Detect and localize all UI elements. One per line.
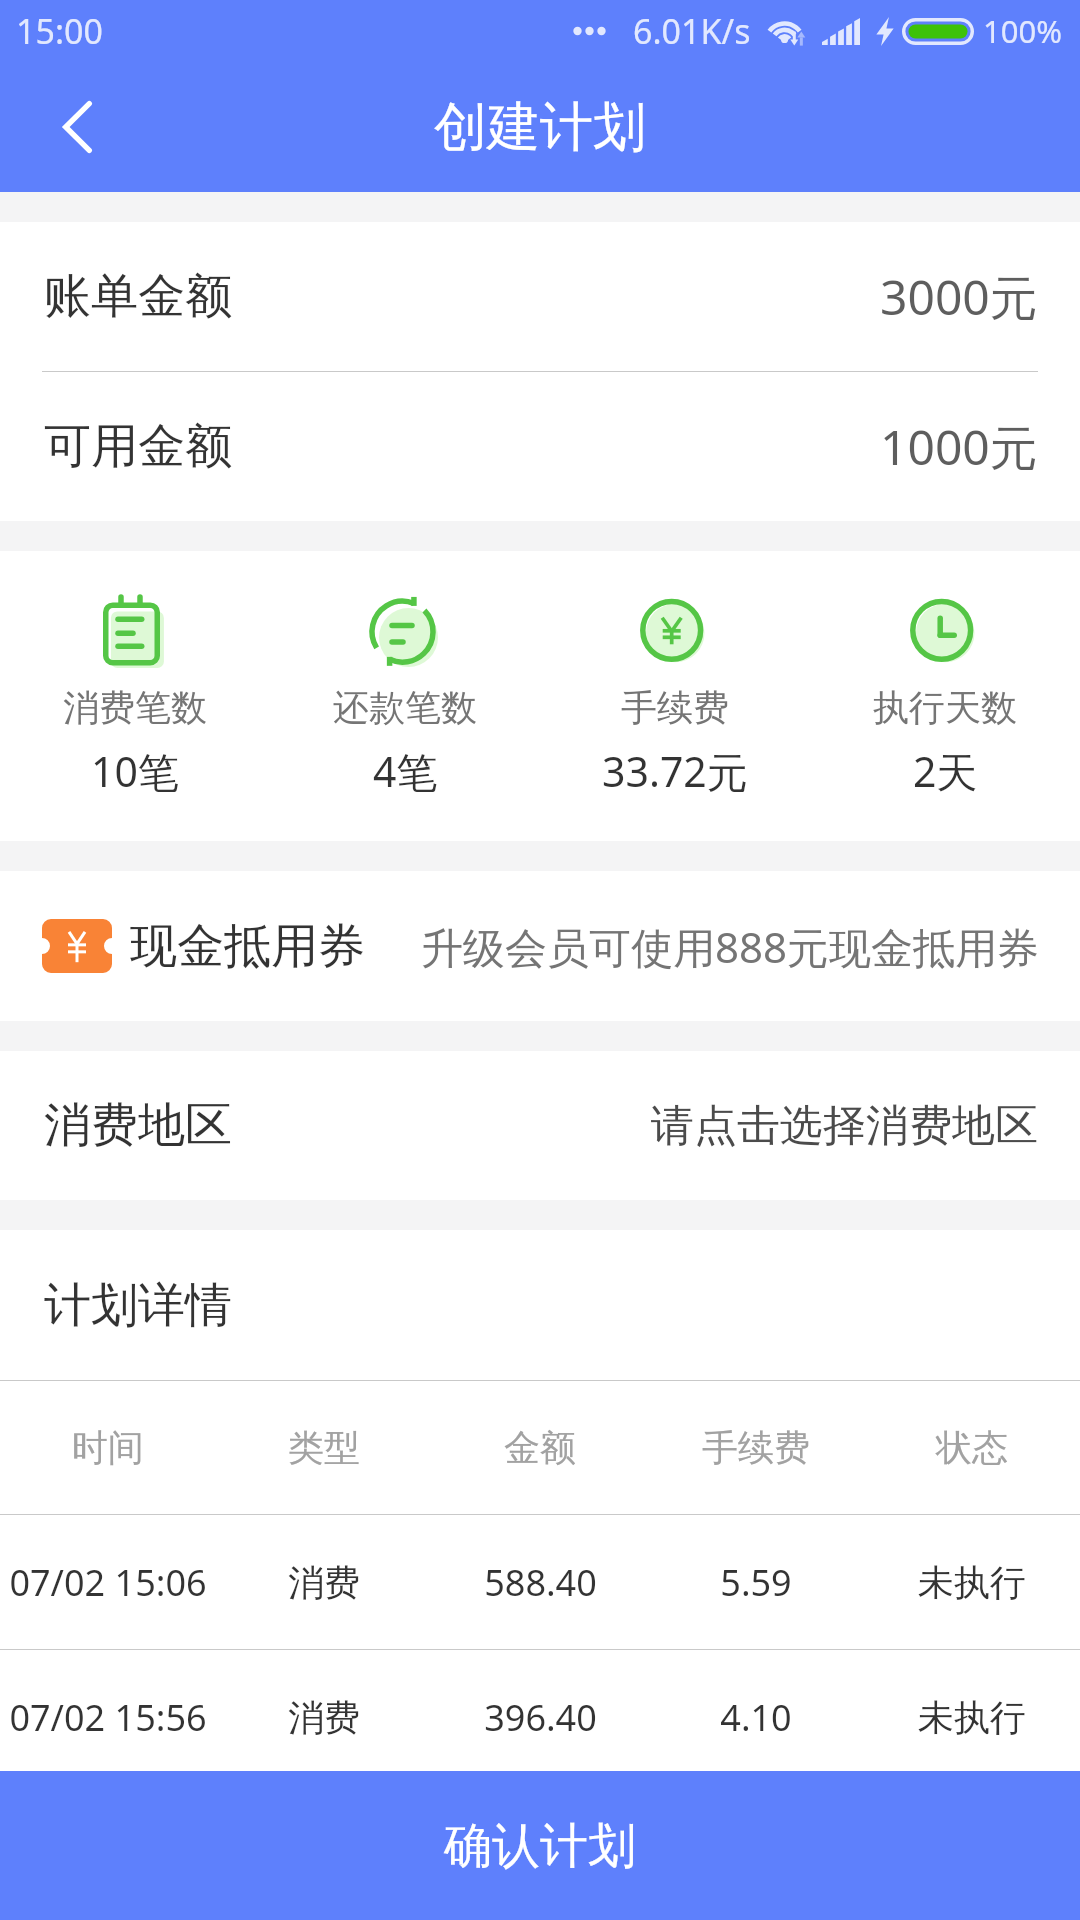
button[interactable]: 确认计划	[0, 1771, 1080, 1920]
staticText: 消费	[288, 1560, 360, 1605]
staticText: 07/02 15:56	[9, 1693, 207, 1742]
staticText: 396.40	[484, 1693, 597, 1742]
staticText: 执行天数	[873, 685, 1017, 730]
staticText: 类型	[288, 1425, 360, 1470]
staticText: 消费笔数	[63, 685, 207, 730]
staticText: 588.40	[484, 1558, 597, 1607]
staticText: 4笔	[373, 743, 438, 799]
staticText: 手续费	[621, 685, 729, 730]
staticText: 10笔	[91, 743, 179, 799]
staticText: 可用金额	[44, 417, 232, 476]
staticText: 时间	[72, 1425, 144, 1470]
button[interactable]: Back	[0, 62, 155, 192]
staticText: 计划详情	[44, 1276, 232, 1335]
staticText: 100%	[983, 10, 1062, 52]
staticText: 4.10	[720, 1693, 792, 1742]
button[interactable]: 可用金额	[0, 372, 1080, 521]
staticText: 确认计划	[444, 1816, 636, 1876]
button[interactable]: 消费笔数	[0, 551, 270, 799]
staticText: 未执行	[918, 1560, 1026, 1605]
staticText: 5.59	[720, 1558, 792, 1607]
button[interactable]: 现金抵用券	[0, 871, 1080, 1021]
button[interactable]: 07/02 15:06	[0, 1515, 1080, 1649]
staticText: 金额	[504, 1425, 576, 1470]
staticText: 还款笔数	[333, 685, 477, 730]
staticText: 升级会员可使用888元现金抵用券	[421, 918, 1040, 975]
staticText: 创建计划	[434, 94, 646, 161]
staticText: 3000元	[880, 264, 1038, 330]
staticText: 账单金额	[44, 267, 232, 326]
staticText: 6.01K/s	[633, 8, 751, 54]
button[interactable]: 手续费	[540, 551, 810, 799]
button[interactable]: 账单金额	[0, 222, 1080, 371]
staticText: 手续费	[702, 1425, 810, 1470]
staticText: 33.72元	[602, 743, 748, 799]
staticText: 消费	[288, 1695, 360, 1740]
staticText: 请点击选择消费地区	[651, 1099, 1038, 1153]
button[interactable]: 消费地区	[0, 1051, 1080, 1200]
button[interactable]: 还款笔数	[270, 551, 540, 799]
button[interactable]: 执行天数	[810, 551, 1080, 799]
staticText: 07/02 15:06	[9, 1558, 207, 1607]
staticText: 未执行	[918, 1695, 1026, 1740]
staticText: 状态	[936, 1425, 1008, 1470]
staticText: 2天	[913, 743, 978, 799]
button[interactable]: 07/02 15:56	[0, 1650, 1080, 1785]
staticText: 15:00	[16, 8, 103, 54]
staticText: 现金抵用券	[130, 917, 365, 976]
staticText: 消费地区	[44, 1096, 232, 1155]
staticText: 1000元	[880, 414, 1038, 480]
